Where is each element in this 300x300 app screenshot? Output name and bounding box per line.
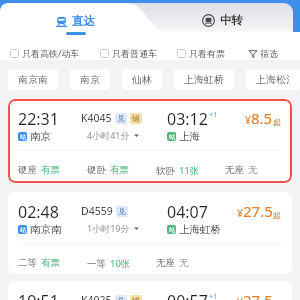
staticText: 27.5 <box>243 290 273 300</box>
staticText: 南京南 <box>18 73 48 86</box>
staticText: +1 <box>209 291 218 300</box>
button[interactable]: 仙林 <box>122 69 162 90</box>
staticText: 南京 <box>30 130 51 143</box>
staticText: 上海松江 <box>256 73 290 86</box>
staticText: 22:31 <box>18 108 59 130</box>
staticText: 无座 <box>225 164 244 176</box>
button[interactable] <box>0 3 300 60</box>
staticText: 03:12 <box>167 108 208 130</box>
button[interactable]: 只看有票 <box>177 48 225 59</box>
staticText: 上海虹桥 <box>179 223 221 236</box>
staticText: 04:07 <box>167 201 208 223</box>
staticText: 有票 <box>41 164 60 176</box>
staticText: ¥ <box>245 113 251 127</box>
staticText: 起 <box>273 117 281 127</box>
staticText: K4025 <box>81 293 112 300</box>
button[interactable]: 南京南 <box>8 69 58 90</box>
staticText: 兑 <box>117 114 125 123</box>
button[interactable]: 19:51 <box>8 281 292 300</box>
staticText: 中转 <box>220 13 243 27</box>
staticText: 无座 <box>156 257 175 269</box>
staticText: 只看高铁/动车 <box>22 47 80 59</box>
staticText: 仙林 <box>132 73 152 86</box>
button[interactable]: 南京 <box>70 69 110 90</box>
button[interactable]: 上海虹桥 <box>174 69 234 90</box>
staticText: 无 <box>179 257 189 269</box>
staticText: 无 <box>248 164 258 176</box>
staticText: 有票 <box>41 257 60 269</box>
staticText: 一等 <box>87 258 106 270</box>
staticText: 筛选 <box>260 48 278 59</box>
button[interactable]: 只看普通车 <box>100 48 157 59</box>
staticText: K4045 <box>81 111 112 125</box>
staticText: 只看有票 <box>189 48 225 59</box>
staticText: 10张 <box>110 257 131 270</box>
staticText: 只看普通车 <box>112 48 157 59</box>
button[interactable]: 上海松江 <box>246 69 300 90</box>
staticText: 00:57 <box>167 290 208 300</box>
button[interactable]: 22:31 <box>8 99 292 183</box>
staticText: ¥ <box>237 206 243 220</box>
staticText: 上海虹桥 <box>184 73 224 86</box>
staticText: 站 <box>169 133 175 141</box>
staticText: 铺 <box>132 296 140 300</box>
staticText: 站 <box>169 226 175 234</box>
staticText: 27.5 <box>243 201 273 221</box>
button[interactable]: 中转 <box>202 13 243 27</box>
staticText: D4559 <box>81 204 113 218</box>
staticText: 11张 <box>179 164 200 177</box>
button[interactable]: 筛选 <box>249 48 278 59</box>
staticText: +1 <box>209 109 218 119</box>
staticText: 铺 <box>132 114 140 123</box>
staticText: 站 <box>20 226 26 234</box>
staticText: 兑 <box>117 296 125 300</box>
staticText: 有票 <box>110 164 129 176</box>
staticText: 4小时41分 <box>87 129 130 141</box>
staticText: 兑 <box>118 207 126 216</box>
staticText: 上海 <box>179 130 200 143</box>
button[interactable]: 只看高铁/动车 <box>10 47 80 59</box>
staticText: 起 <box>273 210 281 220</box>
staticText: 软卧 <box>156 165 175 177</box>
staticText: 直达 <box>72 14 95 28</box>
staticText: 02:48 <box>18 201 59 223</box>
staticText: 1小时19分 <box>87 222 130 234</box>
staticText: 8.5 <box>251 108 273 128</box>
staticText: 19:51 <box>18 290 59 300</box>
staticText: 硬卧 <box>87 164 106 176</box>
staticText: ¥ <box>237 295 243 300</box>
staticText: 硬座 <box>18 164 37 176</box>
staticText: 二等 <box>18 257 37 269</box>
staticText: 南京南 <box>30 223 62 236</box>
staticText: 南京 <box>80 73 100 86</box>
staticText: 站 <box>20 133 26 141</box>
button[interactable]: 02:48 <box>8 192 292 274</box>
